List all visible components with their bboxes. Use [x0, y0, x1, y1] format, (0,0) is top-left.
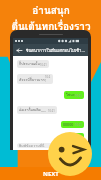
- button[interactable]: 00000: [63, 122, 82, 127]
- staticText: ก็ประมาณนั้น: [19, 61, 40, 67]
- other: Winking face sticker: [48, 132, 92, 176]
- button[interactable]: NEXT: [0, 167, 101, 180]
- staticText: ตื่นเต้นทุกเรื่องราว: [11, 19, 91, 35]
- staticText: 10:21: [76, 134, 82, 142]
- button[interactable]: พิมพ์ข้อความที่นี่: [19, 143, 69, 148]
- staticText: พิมพ์ข้อความที่นี่: [19, 143, 45, 148]
- staticText: สัจจะนี่ก็ยาวมาก: [19, 77, 45, 83]
- button[interactable]: ใช่นะ: [66, 92, 82, 98]
- button[interactable]: สัจจะนี่ก็ยาวมาก: [19, 75, 51, 83]
- staticText: 10:21: [45, 75, 51, 83]
- staticText: อ๋อเราก็เลยคิด___: [19, 107, 46, 113]
- staticText: อ่านสนุก: [32, 3, 70, 19]
- staticText: จินตนาการในฝันแต่ก่อนไม่เข้า…: [26, 47, 85, 54]
- staticText: 00000: [63, 122, 74, 127]
- staticText: 10:21: [75, 94, 82, 98]
- button[interactable]: Back: [16, 47, 23, 54]
- button[interactable]: ดี: [73, 134, 82, 142]
- staticText: NEXT: [43, 170, 59, 178]
- staticText: ใช่นะ: [66, 92, 75, 98]
- staticText: 10:21: [40, 63, 47, 67]
- staticText: 10:21: [48, 109, 55, 113]
- staticText: 10:21: [75, 123, 82, 127]
- button[interactable]: ก็ประมาณนั้น: [19, 61, 47, 67]
- button[interactable]: Back: [16, 44, 85, 56]
- button[interactable]: อ๋อเราก็เลยคิด___: [19, 107, 55, 113]
